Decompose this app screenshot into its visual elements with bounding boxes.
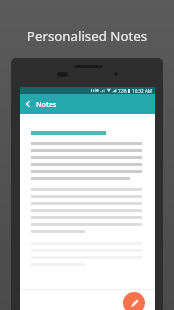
button[interactable]: Edit note	[123, 292, 145, 310]
staticText: Notes	[36, 99, 57, 109]
staticText: 72%	[118, 88, 127, 94]
button[interactable]: Back	[20, 94, 36, 114]
staticText: Personalised Notes	[0, 27, 174, 45]
staticText: 10:32 AM	[132, 88, 153, 94]
